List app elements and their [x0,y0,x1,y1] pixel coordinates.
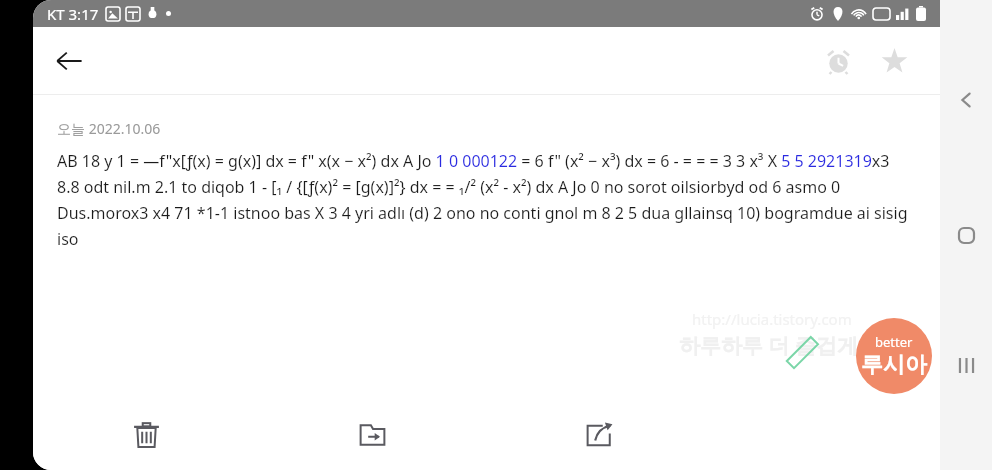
button[interactable]: Back [944,78,988,122]
staticText: http://lucia.tistory.com [692,309,852,329]
button[interactable]: Home [944,213,988,257]
button[interactable]: Delete [33,398,259,470]
staticText: better [875,333,913,351]
staticText: 하루하루 더 즐겁게 [679,331,858,360]
button[interactable]: Share [486,398,713,470]
button[interactable]: Move to folder [259,398,486,470]
button[interactable]: Reminder [810,33,866,89]
button[interactable]: Back [41,33,97,89]
staticText: 오늘 2022.10.06 [57,119,161,138]
staticText: KT 3:17 [47,4,99,24]
staticText: 루시아 [861,351,927,379]
button[interactable]: Recent apps [944,343,988,387]
staticText: AB 18 y 1 = —f"x[ƒ(x) = g(x)] dx = f" x(… [57,150,916,250]
button[interactable]: Favorite [866,33,922,89]
